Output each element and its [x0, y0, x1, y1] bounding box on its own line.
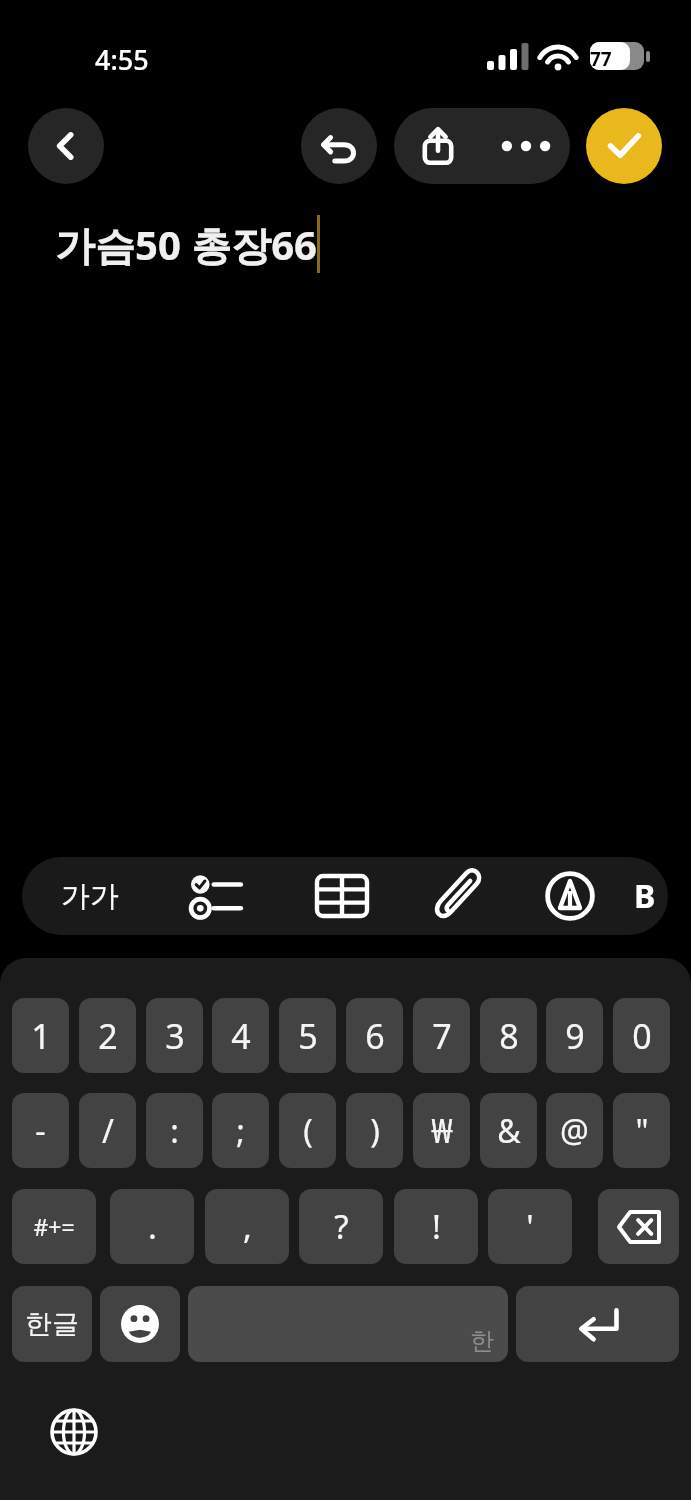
staticText: ) — [370, 1109, 380, 1153]
button[interactable]: ! — [394, 1189, 478, 1264]
button[interactable]: 5 — [279, 998, 336, 1073]
button[interactable]: 7 — [413, 998, 470, 1073]
staticText: : — [170, 1109, 179, 1153]
button[interactable]: 4 — [212, 998, 269, 1073]
button[interactable]: " — [613, 1093, 670, 1168]
staticText: 가슴50 총장66 — [55, 217, 317, 272]
button[interactable]: @ — [546, 1093, 603, 1168]
button[interactable]: Table — [290, 857, 394, 935]
staticText: B — [634, 874, 656, 918]
button[interactable]: / — [79, 1093, 136, 1168]
staticText: 4 — [231, 1013, 251, 1059]
button[interactable]: - — [12, 1093, 69, 1168]
button[interactable]: Enter — [516, 1286, 679, 1362]
staticText: ! — [432, 1204, 441, 1249]
staticText: @ — [560, 1109, 589, 1153]
button[interactable]: 가가 — [36, 857, 144, 935]
staticText: 가가 — [61, 878, 119, 915]
button[interactable]: Draw — [518, 857, 622, 935]
staticText: 한 — [470, 1326, 494, 1356]
button[interactable]: 1 — [12, 998, 69, 1073]
staticText: - — [35, 1109, 46, 1153]
button[interactable]: #+= — [12, 1189, 96, 1264]
staticText: . — [148, 1204, 157, 1249]
button[interactable]: 2 — [79, 998, 136, 1073]
button[interactable]: ; — [212, 1093, 269, 1168]
button[interactable]: 6 — [346, 998, 403, 1073]
staticText: 4:55 — [95, 41, 149, 78]
staticText: 1 — [31, 1013, 51, 1059]
button[interactable]: . — [110, 1189, 194, 1264]
button[interactable]: More options — [482, 108, 570, 184]
button[interactable]: Emoji — [100, 1286, 180, 1362]
staticText: ( — [303, 1109, 313, 1153]
button[interactable]: ? — [299, 1189, 383, 1264]
button[interactable]: ) — [346, 1093, 403, 1168]
staticText: 5 — [298, 1013, 318, 1059]
staticText: 0 — [632, 1013, 652, 1059]
staticText: 7 — [432, 1013, 452, 1059]
button[interactable]: 9 — [546, 998, 603, 1073]
button[interactable]: B — [634, 857, 668, 935]
button[interactable]: & — [480, 1093, 537, 1168]
button[interactable]: Space — [188, 1286, 508, 1362]
button[interactable]: 한글 — [12, 1286, 92, 1362]
button[interactable]: Backspace — [598, 1189, 679, 1264]
staticText: ' — [526, 1204, 534, 1249]
button[interactable]: Done — [586, 108, 662, 184]
staticText: #+= — [33, 1211, 75, 1242]
button[interactable]: , — [205, 1189, 289, 1264]
staticText: 3 — [165, 1013, 185, 1059]
button[interactable]: Change keyboard language — [40, 1398, 108, 1466]
staticText: & — [497, 1109, 521, 1153]
button[interactable]: Attach file — [406, 857, 514, 935]
button[interactable]: ( — [279, 1093, 336, 1168]
staticText: 6 — [365, 1013, 385, 1059]
button[interactable]: Share — [394, 108, 482, 184]
staticText: 한글 — [25, 1307, 79, 1341]
button[interactable]: Undo — [301, 108, 377, 184]
button[interactable]: ₩ — [413, 1093, 470, 1168]
button[interactable]: : — [146, 1093, 203, 1168]
staticText: 77 — [590, 46, 612, 72]
button[interactable]: 3 — [146, 998, 203, 1073]
staticText: ; — [236, 1109, 245, 1153]
button[interactable]: ' — [488, 1189, 572, 1264]
staticText: / — [102, 1109, 114, 1153]
button[interactable]: Checklist — [160, 857, 278, 935]
staticText: 8 — [499, 1013, 519, 1059]
button[interactable]: 0 — [613, 998, 670, 1073]
staticText: " — [635, 1109, 649, 1153]
staticText: 9 — [565, 1013, 585, 1059]
staticText: ? — [334, 1204, 349, 1249]
staticText: ₩ — [431, 1109, 453, 1153]
staticText: , — [243, 1204, 252, 1249]
button[interactable]: 8 — [480, 998, 537, 1073]
button[interactable]: Back — [28, 108, 104, 184]
staticText: 2 — [98, 1013, 118, 1059]
